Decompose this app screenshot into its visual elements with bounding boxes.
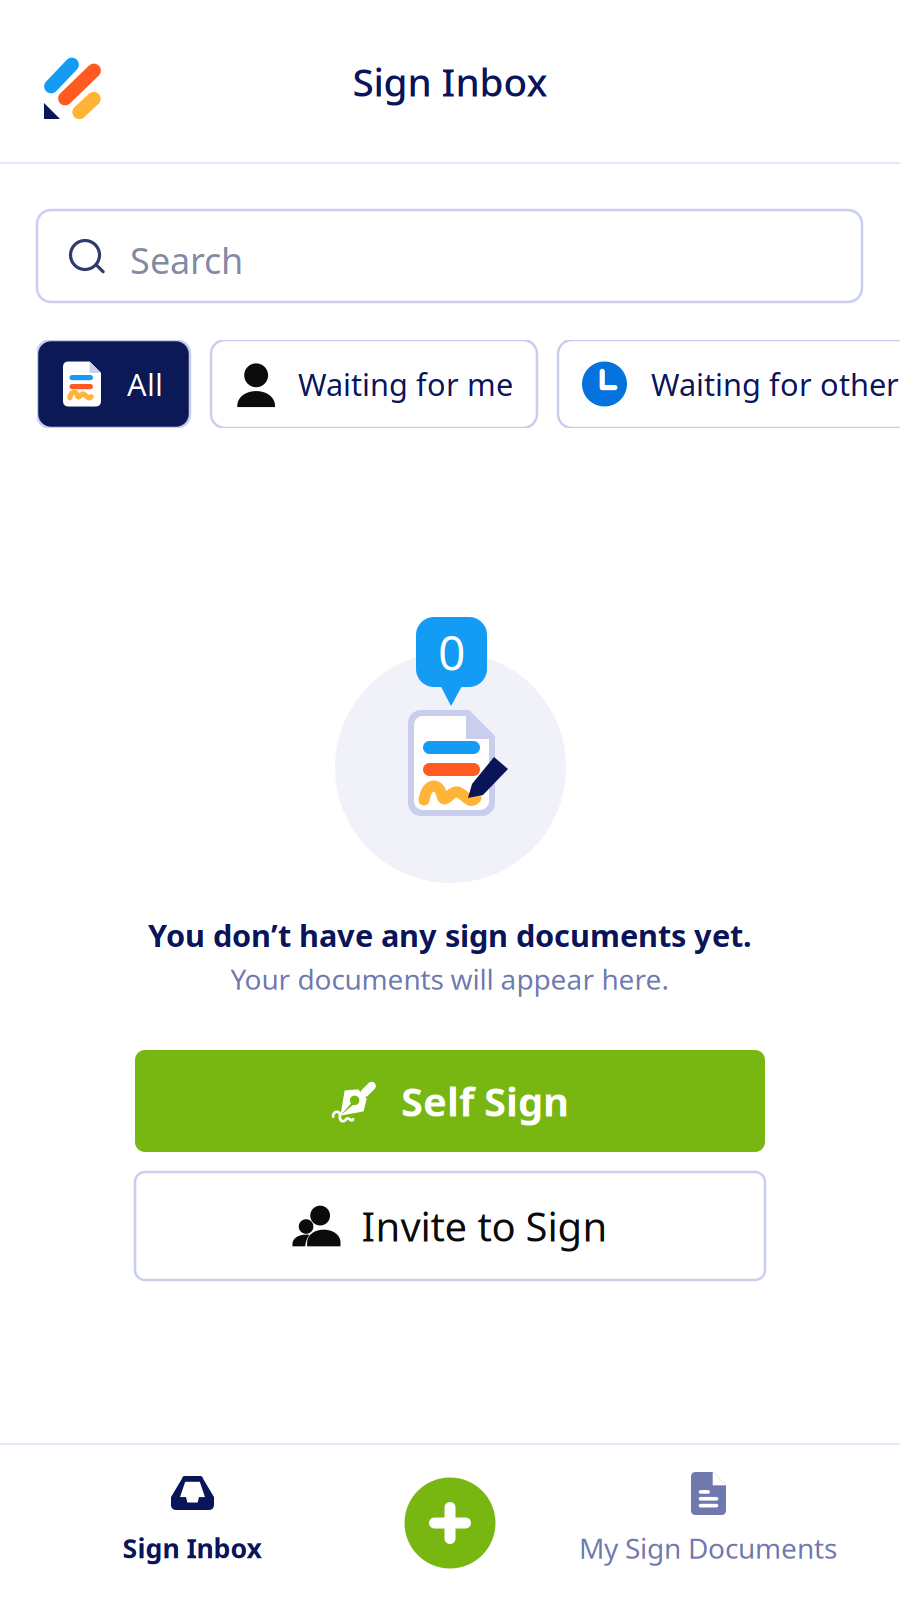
staticText: My Sign Documents — [579, 1529, 837, 1567]
button[interactable]: Waiting for others — [558, 340, 900, 428]
button[interactable]: Self Sign — [135, 1050, 765, 1152]
staticText: Waiting for others — [651, 364, 900, 404]
button[interactable]: Sign Inbox — [42, 1443, 342, 1600]
button[interactable]: My Sign Documents — [538, 1443, 878, 1600]
staticText: All — [127, 364, 163, 404]
staticText: Sign Inbox — [122, 1530, 261, 1566]
staticText: Search — [130, 236, 243, 284]
staticText: Invite to Sign — [361, 1199, 607, 1252]
button[interactable]: Search — [37, 210, 862, 302]
staticText: You don’t have any sign documents yet. — [148, 915, 752, 955]
staticText: Waiting for me — [298, 364, 513, 404]
staticText: Self Sign — [401, 1074, 569, 1127]
button[interactable]: All — [37, 340, 190, 428]
staticText: Your documents will appear here. — [230, 960, 669, 998]
button[interactable]: Waiting for me — [211, 340, 537, 428]
button[interactable]: Jotform home — [36, 52, 136, 152]
button[interactable]: Invite to Sign — [135, 1172, 765, 1280]
button[interactable]: Create new document — [380, 1443, 520, 1600]
staticText: 0 — [438, 620, 465, 684]
staticText: Sign Inbox — [352, 56, 547, 107]
